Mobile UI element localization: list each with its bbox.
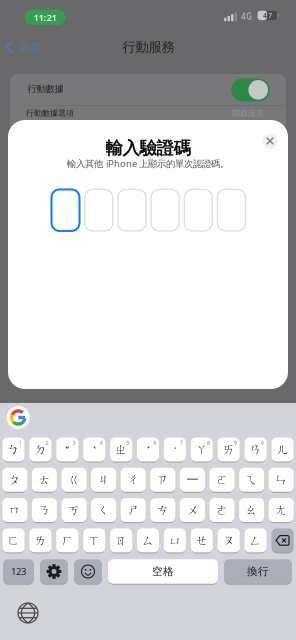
button[interactable]: ㄎ bbox=[61, 498, 86, 523]
staticText: ㄔ bbox=[127, 472, 139, 487]
staticText: ㄒ bbox=[88, 533, 100, 548]
button[interactable]: ㄛ bbox=[209, 467, 234, 492]
button[interactable]: ㄢ bbox=[245, 437, 267, 462]
staticText: ㄡ bbox=[223, 533, 235, 548]
staticText: 一 bbox=[186, 472, 198, 487]
button[interactable]: ㄤ bbox=[269, 498, 294, 523]
staticText: ㄑ bbox=[98, 503, 110, 517]
staticText: 5 bbox=[126, 439, 129, 446]
staticText: 開啟漫遊 bbox=[232, 108, 264, 118]
button[interactable]: ㄅ bbox=[2, 437, 24, 462]
button[interactable]: 123 bbox=[3, 559, 34, 584]
staticText: ㄦ bbox=[276, 442, 288, 457]
staticText: ㄍ bbox=[68, 472, 80, 487]
button[interactable]: ㄍ bbox=[61, 467, 86, 492]
button[interactable]: ㄈ bbox=[2, 528, 24, 553]
staticText: 6 bbox=[153, 439, 156, 446]
staticText: 行動數據 bbox=[27, 83, 63, 95]
button[interactable]: ㄟ bbox=[239, 467, 264, 492]
staticText: ㄆ bbox=[9, 472, 21, 487]
staticText: ˋ bbox=[93, 444, 96, 460]
staticText: ㄓ bbox=[115, 442, 127, 457]
staticText: 8 bbox=[207, 439, 210, 446]
staticText: ㄣ bbox=[275, 472, 287, 487]
button[interactable]: ㄘ bbox=[150, 498, 175, 523]
staticText: ㄝ bbox=[196, 533, 208, 548]
staticText: ㄖ bbox=[115, 533, 127, 548]
staticText: ㄋ bbox=[38, 503, 50, 517]
button[interactable]: 下一個鍵盤 bbox=[16, 601, 40, 625]
staticText: 換行 bbox=[247, 565, 269, 578]
staticText: ㄠ bbox=[246, 503, 258, 517]
button[interactable]: ㄆ bbox=[2, 467, 27, 492]
button[interactable]: ㄉ bbox=[29, 437, 51, 462]
staticText: ㄜ bbox=[216, 503, 228, 517]
button[interactable]: 空格 bbox=[108, 559, 218, 584]
staticText: 4G bbox=[241, 11, 252, 22]
staticText: 行動數據選項 bbox=[26, 108, 74, 118]
staticText: 9 bbox=[234, 439, 237, 446]
button[interactable]: ㄌ bbox=[29, 528, 51, 553]
button[interactable]: ㄜ bbox=[209, 498, 234, 523]
staticText: 7 bbox=[180, 439, 183, 446]
button[interactable]: ㄒ bbox=[83, 528, 105, 553]
button[interactable]: ˙ bbox=[164, 437, 186, 462]
button[interactable]: ㄑ bbox=[91, 498, 116, 523]
staticText: ㄉ bbox=[34, 442, 46, 457]
button[interactable]: ㄖ bbox=[110, 528, 132, 553]
button[interactable]: ㄩ bbox=[164, 528, 186, 553]
button[interactable]: 一 bbox=[180, 467, 205, 492]
button[interactable]: ㄝ bbox=[191, 528, 213, 553]
staticText: ㄘ bbox=[157, 503, 169, 517]
button[interactable]: ㄞ bbox=[218, 437, 240, 462]
button[interactable]: Google bbox=[7, 406, 30, 429]
button[interactable]: ㄨ bbox=[180, 498, 205, 523]
staticText: 7 bbox=[268, 11, 272, 20]
button[interactable]: ㄔ bbox=[121, 467, 146, 492]
button[interactable]: ㄊ bbox=[32, 467, 57, 492]
staticText: ㄅ bbox=[7, 442, 19, 457]
staticText: ㄟ bbox=[246, 472, 258, 487]
button[interactable]: ㄏ bbox=[56, 528, 78, 553]
button[interactable]: 換行 bbox=[224, 559, 292, 584]
staticText: 1 bbox=[19, 439, 22, 446]
staticText: 11:21 bbox=[33, 11, 56, 23]
button[interactable]: ˋ bbox=[83, 437, 105, 462]
button[interactable]: ㄣ bbox=[269, 467, 294, 492]
staticText: 設定 bbox=[20, 40, 42, 53]
staticText: ㄗ bbox=[157, 472, 169, 487]
staticText: ㄩ bbox=[169, 533, 181, 548]
button[interactable]: ㄠ bbox=[239, 498, 264, 523]
button[interactable]: ㄓ bbox=[110, 437, 132, 462]
staticText: ˊ bbox=[146, 444, 149, 460]
button[interactable]: ㄚ bbox=[191, 437, 213, 462]
button[interactable]: ㄙ bbox=[137, 528, 159, 553]
button[interactable]: ㄇ bbox=[2, 498, 27, 523]
button[interactable]: 設定 bbox=[40, 559, 68, 584]
staticText: ㄕ bbox=[127, 503, 139, 517]
staticText: ㄚ bbox=[196, 442, 208, 457]
staticText: ˇ bbox=[65, 444, 70, 460]
button[interactable]: 行動數據選項 bbox=[10, 105, 286, 121]
staticText: 空格 bbox=[152, 565, 174, 578]
button[interactable]: ˇ bbox=[56, 437, 78, 462]
button[interactable]: ㄦ bbox=[271, 437, 293, 462]
button[interactable]: 設定 bbox=[0, 36, 50, 58]
staticText: ㄐ bbox=[98, 472, 110, 487]
button[interactable]: 刪除 bbox=[271, 528, 293, 553]
button[interactable]: ㄐ bbox=[91, 467, 116, 492]
staticText: ㄥ bbox=[250, 533, 262, 548]
button[interactable]: ㄋ bbox=[32, 498, 57, 523]
staticText: ㄈ bbox=[7, 533, 19, 548]
button[interactable]: 驗證碼輸入 bbox=[51, 189, 246, 231]
button[interactable]: ㄕ bbox=[121, 498, 146, 523]
button[interactable]: ㄡ bbox=[218, 528, 240, 553]
button[interactable]: ˊ bbox=[137, 437, 159, 462]
button[interactable]: 行動數據 bbox=[10, 74, 286, 105]
button[interactable]: ㄥ bbox=[245, 528, 267, 553]
staticText: ㄌ bbox=[34, 533, 46, 548]
staticText: 4 bbox=[99, 439, 102, 446]
button[interactable]: ㄗ bbox=[150, 467, 175, 492]
button[interactable]: 表情符號 bbox=[74, 559, 102, 584]
button[interactable]: 關閉 bbox=[260, 131, 280, 151]
